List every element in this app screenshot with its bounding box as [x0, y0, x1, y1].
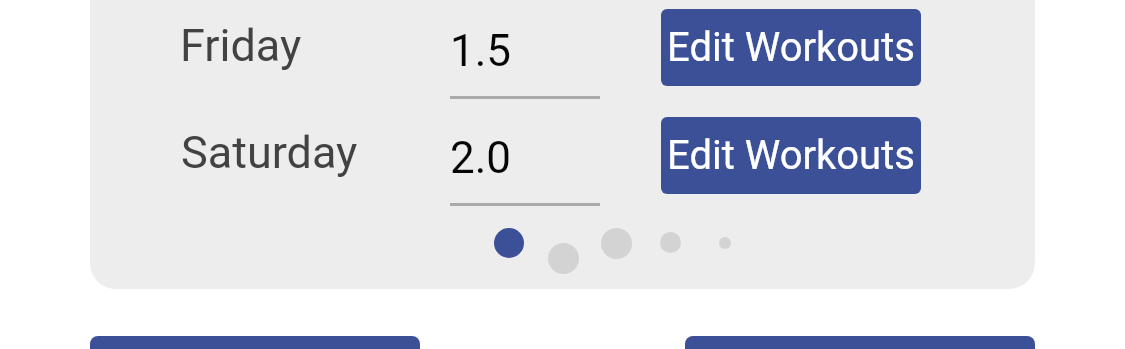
button[interactable]: Edit Workouts	[661, 9, 921, 86]
button[interactable]: Previous week	[90, 336, 420, 349]
button[interactable]: Next week	[685, 336, 1035, 349]
button[interactable]: Page 1	[494, 228, 524, 258]
staticText: 2.0	[450, 132, 512, 184]
button[interactable]: Page 2	[548, 243, 579, 274]
button[interactable]: Edit Workouts	[661, 117, 921, 194]
staticText: Edit Workouts	[667, 132, 915, 179]
button[interactable]: Page 3	[601, 228, 632, 259]
staticText: Friday	[180, 19, 302, 72]
button[interactable]: Page 4	[660, 232, 681, 253]
button[interactable]: Page 5	[719, 237, 731, 249]
staticText: Edit Workouts	[667, 24, 915, 71]
staticText: Saturday	[181, 126, 358, 179]
staticText: 1.5	[450, 25, 512, 77]
